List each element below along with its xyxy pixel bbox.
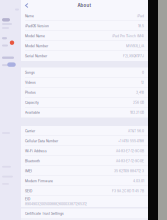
button[interactable]: Videos bbox=[21, 77, 148, 87]
staticText: About bbox=[77, 3, 91, 8]
button[interactable]: Bluetooth bbox=[21, 156, 148, 166]
staticText: iPad Pro 11-inch (M4) bbox=[112, 34, 144, 38]
button[interactable]: Model Number bbox=[21, 41, 148, 51]
button[interactable]: Back bbox=[23, 2, 30, 9]
button[interactable]: iPadOS Version bbox=[21, 21, 148, 31]
staticText: Serial Number bbox=[25, 54, 47, 58]
button[interactable]: Available bbox=[21, 107, 148, 117]
staticText: Carrier bbox=[25, 129, 35, 133]
staticText: Certificate Trust Settings bbox=[25, 212, 64, 215]
staticText: Photos bbox=[25, 91, 36, 94]
staticText: MVV93LL/A bbox=[126, 44, 144, 48]
staticText: Model Number bbox=[25, 44, 48, 48]
staticText: 89049032005008882600033871265312 bbox=[25, 202, 87, 206]
staticText: 256 GB bbox=[133, 101, 144, 104]
staticText: Cellular Data Number bbox=[25, 139, 58, 143]
staticText: Videos bbox=[25, 81, 36, 84]
button[interactable]: Serial Number bbox=[21, 51, 148, 61]
button[interactable]: Model Name bbox=[21, 31, 148, 41]
staticText: +1 (415) 555-0198 bbox=[118, 139, 144, 143]
staticText: 12 bbox=[141, 81, 144, 84]
button[interactable]: Certificate Trust Settings bbox=[21, 208, 148, 218]
button[interactable]: Capacity bbox=[21, 97, 148, 107]
staticText: iPadOS Version bbox=[25, 24, 49, 28]
staticText: IMEI bbox=[25, 169, 32, 173]
staticText: iPad bbox=[137, 14, 144, 18]
button[interactable]: Songs bbox=[21, 67, 148, 77]
staticText: Name bbox=[25, 14, 34, 18]
staticText: SEID bbox=[25, 189, 32, 193]
button[interactable]: Name bbox=[21, 11, 148, 21]
staticText: Bluetooth bbox=[25, 159, 40, 163]
staticText: 3,418 bbox=[136, 91, 144, 94]
staticText: Model Name bbox=[25, 34, 45, 38]
button[interactable]: Carrier bbox=[21, 126, 148, 136]
staticText: AT&T 56.0 bbox=[128, 129, 144, 133]
staticText: A4:83:E7:12:9C:0B bbox=[116, 149, 144, 153]
staticText: F2LX9QK1P7J bbox=[123, 54, 144, 58]
staticText: A4:83:E7:12:9C:0E bbox=[116, 159, 144, 163]
button[interactable]: Cellular Data Number bbox=[21, 136, 148, 146]
staticText: 4.03.01 bbox=[133, 179, 144, 183]
staticText: 183.21 GB bbox=[130, 111, 144, 114]
staticText: Available bbox=[25, 111, 40, 114]
button[interactable]: SEID bbox=[21, 186, 148, 196]
staticText: Songs bbox=[25, 71, 35, 74]
button[interactable]: Photos bbox=[21, 87, 148, 97]
button[interactable]: Modem Firmware bbox=[21, 176, 148, 186]
staticText: Wi-Fi Address bbox=[25, 149, 47, 153]
button[interactable]: EID bbox=[21, 196, 148, 207]
staticText: Modem Firmware bbox=[25, 179, 53, 183]
staticText: Capacity bbox=[25, 101, 39, 104]
staticText: F3 9A 2C 8D 11 45 7B bbox=[112, 189, 144, 193]
staticText: EID bbox=[25, 197, 30, 201]
staticText: 0 bbox=[142, 71, 144, 74]
staticText: 35 621109 884712 3 bbox=[114, 169, 144, 173]
staticText: 18.5 bbox=[138, 24, 144, 28]
button[interactable]: Wi-Fi Address bbox=[21, 146, 148, 156]
button[interactable]: IMEI bbox=[21, 166, 148, 176]
